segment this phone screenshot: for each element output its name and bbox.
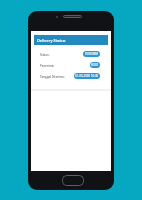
staticText: Delivery Status	[37, 38, 66, 43]
staticText: 01-05-2020 10:30	[75, 74, 99, 78]
staticText: Status:	[40, 53, 50, 57]
staticText: Tanggal Diterima:	[40, 75, 65, 79]
staticText: BUDI	[91, 63, 99, 67]
staticText: Penerima:	[40, 64, 55, 68]
button[interactable]: 01-05-2020 10:30	[74, 73, 100, 79]
staticText: TERKIRIM	[85, 52, 99, 56]
button[interactable]: TERKIRIM	[83, 51, 100, 57]
button[interactable]: BUDI	[90, 62, 100, 68]
button[interactable]: Status:	[31, 51, 111, 57]
button[interactable]: Home	[62, 175, 84, 186]
button[interactable]: Delivery Status	[34, 35, 108, 45]
button[interactable]: Tanggal Diterima:	[31, 73, 111, 79]
button[interactable]: Penerima:	[31, 62, 111, 68]
